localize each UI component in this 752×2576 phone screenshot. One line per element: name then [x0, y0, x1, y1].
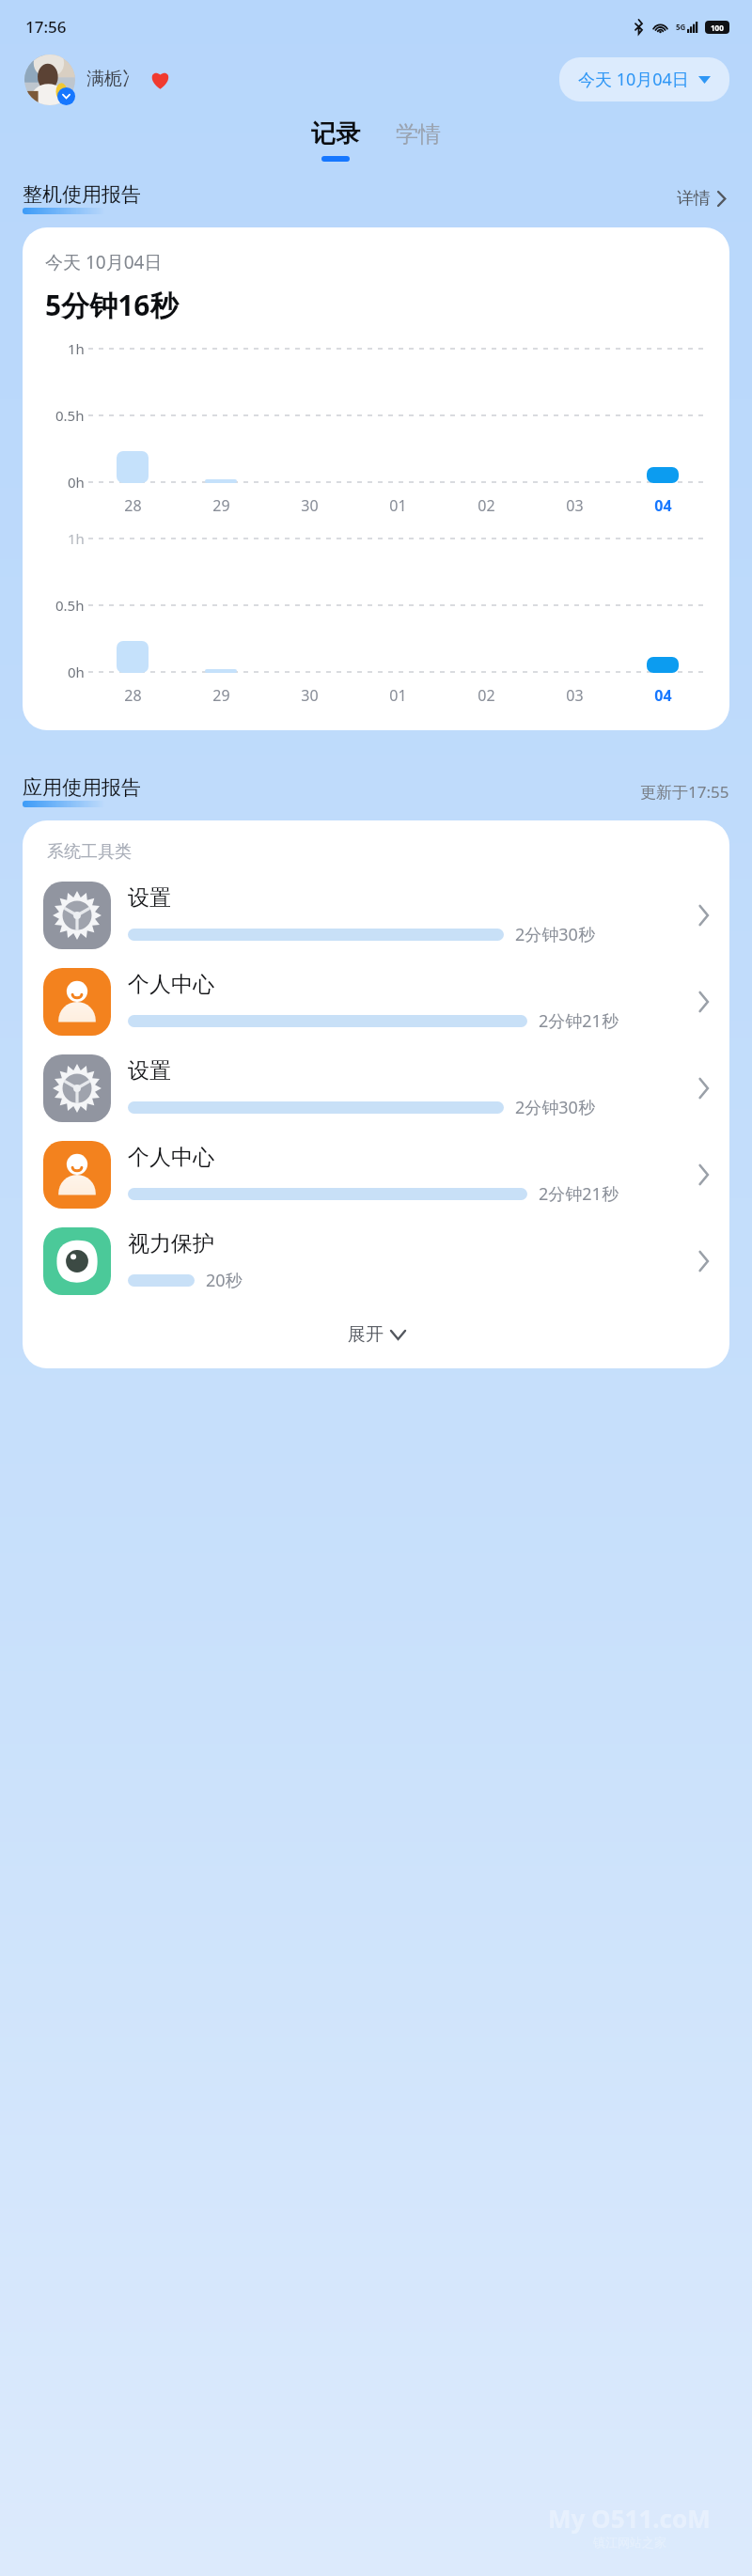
button[interactable]: 今天 10月04日 [559, 57, 729, 101]
staticText: 整机使用报告 [23, 182, 141, 207]
staticText: 2分钟30秒 [515, 923, 595, 946]
staticText: 1h [68, 339, 85, 358]
button[interactable]: 详情 [673, 184, 729, 213]
button[interactable]: 个人中心 [23, 959, 729, 1045]
staticText: 30 [301, 685, 319, 706]
staticText: 详情 [677, 188, 711, 210]
staticText: 2分钟21秒 [539, 1182, 619, 1206]
staticText: 01 [389, 495, 407, 516]
staticText: 03 [566, 685, 584, 706]
staticText: 01 [389, 685, 407, 706]
button[interactable]: 展开 [23, 1310, 729, 1359]
staticText: 04 [654, 685, 672, 706]
staticText: 设置 [128, 1057, 171, 1085]
staticText: 02 [478, 495, 495, 516]
staticText: 2分钟30秒 [515, 1096, 595, 1119]
staticText: 学情 [396, 120, 441, 148]
staticText: 0h [68, 473, 85, 492]
staticText: 100 [711, 23, 724, 33]
other: Open 个人中心 details [698, 992, 709, 1011]
staticText: 应用使用报告 [23, 775, 141, 800]
staticText: 个人中心 [128, 1144, 214, 1171]
staticText: 镇江网站之家 [593, 2535, 666, 2550]
staticText: 0.5h [55, 596, 85, 615]
staticText: 视力保护 [128, 1230, 214, 1257]
staticText: 17:56 [25, 16, 67, 38]
staticText: 5G [676, 22, 686, 32]
button[interactable]: Profile avatar [23, 53, 75, 105]
staticText: My O511.coM [548, 2502, 711, 2535]
staticText: 0h [68, 663, 85, 681]
button[interactable]: 个人中心 [23, 1132, 729, 1218]
button[interactable]: 设置 [23, 872, 729, 959]
staticText: 30 [301, 495, 319, 516]
button[interactable]: 视力保护 [23, 1218, 729, 1304]
staticText: 今天 10月04日 [578, 68, 689, 91]
staticText: 更新于17:55 [640, 781, 729, 803]
button[interactable]: 设置 [23, 1045, 729, 1132]
button[interactable]: 学情 [386, 118, 450, 150]
staticText: 29 [212, 685, 230, 706]
button[interactable]: 记录 [302, 118, 369, 162]
staticText: 2分钟21秒 [539, 1009, 619, 1033]
staticText: 展开 [348, 1323, 384, 1346]
staticText: 个人中心 [128, 971, 214, 998]
staticText: 系统工具类 [47, 841, 132, 863]
staticText: 03 [566, 495, 584, 516]
staticText: 04 [654, 495, 672, 516]
staticText: 02 [478, 685, 495, 706]
button[interactable]: 今天 10月04日 [23, 227, 729, 730]
staticText: 满栀冫 [86, 68, 140, 90]
staticText: 设置 [128, 884, 171, 912]
staticText: 28 [124, 495, 142, 516]
staticText: 5分钟16秒 [45, 286, 179, 324]
staticText: 29 [212, 495, 230, 516]
staticText: 20秒 [206, 1269, 243, 1292]
other: Open 视力保护 details [698, 1252, 709, 1271]
other: Open 个人中心 details [698, 1165, 709, 1184]
staticText: 今天 10月04日 [45, 250, 163, 274]
staticText: 1h [68, 529, 85, 548]
staticText: 28 [124, 685, 142, 706]
staticText: 记录 [311, 118, 360, 149]
other: Open 设置 details [698, 1079, 709, 1098]
staticText: 0.5h [55, 406, 85, 425]
other: Open 设置 details [698, 906, 709, 925]
